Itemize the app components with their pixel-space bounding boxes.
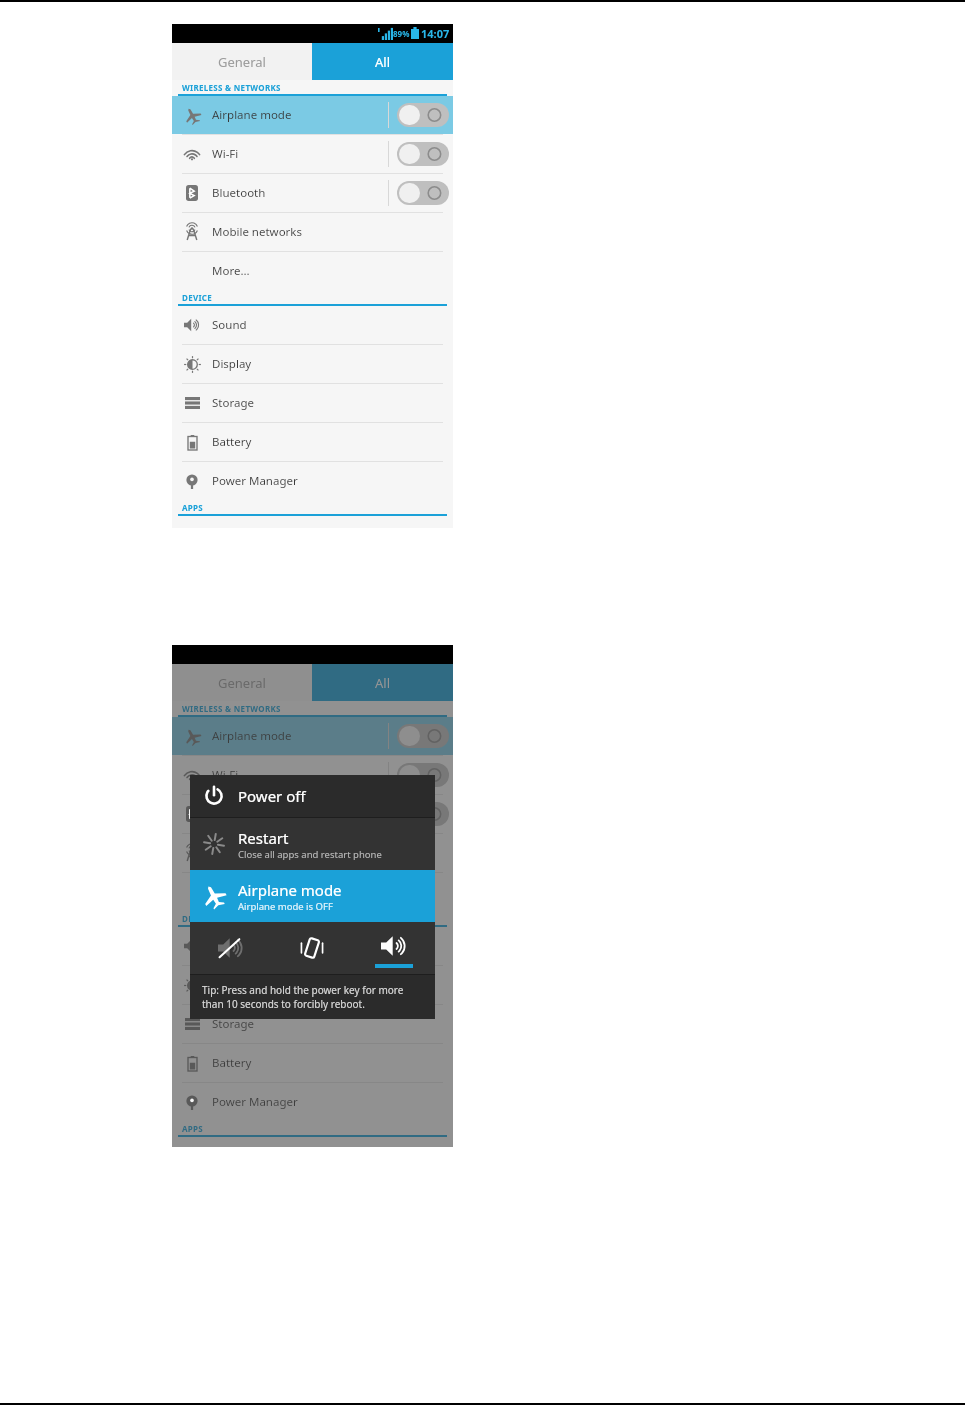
button[interactable]: Airplane mode [190, 870, 435, 922]
button[interactable] [397, 142, 449, 166]
button[interactable]: Sound [172, 306, 453, 344]
button[interactable]: Display [172, 966, 453, 1004]
button[interactable]: General [172, 43, 312, 80]
staticText: DEVICE [182, 292, 213, 303]
button[interactable]: Sound on [353, 922, 435, 974]
staticText: Mobile networks [212, 845, 303, 861]
staticText: Display [212, 356, 252, 372]
staticText: All [375, 674, 391, 692]
staticText: Power Manager [212, 473, 298, 489]
button[interactable]: More… [172, 873, 453, 911]
button[interactable]: Silent mode [190, 922, 271, 974]
button[interactable]: Battery [172, 423, 453, 461]
button[interactable]: Bluetooth [172, 174, 453, 212]
button[interactable]: Power Manager [172, 1083, 453, 1121]
button[interactable] [397, 181, 449, 205]
staticText: Airplane mode [238, 880, 342, 900]
button[interactable] [397, 763, 449, 787]
staticText: Battery [212, 434, 252, 450]
staticText: Restart [238, 828, 289, 848]
staticText: APPS [182, 502, 204, 513]
button[interactable]: Airplane mode [172, 717, 453, 755]
staticText: Sound [212, 317, 247, 333]
staticText: Power off [238, 786, 306, 806]
staticText: General [218, 674, 266, 692]
staticText: More… [212, 884, 250, 900]
staticText: Wi-Fi [212, 146, 239, 162]
staticText: All [375, 53, 391, 71]
staticText: APPS [182, 1123, 204, 1134]
staticText: Power Manager [212, 1094, 298, 1110]
staticText: Bluetooth [212, 185, 266, 201]
button[interactable]: Wi-Fi [172, 756, 453, 794]
staticText: Mobile networks [212, 224, 303, 240]
staticText: 14:07 [421, 26, 450, 41]
staticText: Wi-Fi [212, 767, 239, 783]
button[interactable]: All [312, 664, 453, 701]
staticText: Storage [212, 1016, 254, 1032]
button[interactable]: Wi-Fi [172, 135, 453, 173]
button[interactable]: Storage [172, 384, 453, 422]
staticText: 89% [393, 28, 410, 39]
staticText: WIRELESS & NETWORKS [182, 82, 281, 93]
button[interactable] [397, 802, 449, 826]
button[interactable]: Sound [172, 927, 453, 965]
staticText: Airplane mode [212, 728, 292, 744]
staticText: Bluetooth [212, 806, 266, 822]
staticText: Tip: Press and hold the power key for mo… [202, 983, 425, 1011]
button[interactable]: Airplane mode [172, 96, 453, 134]
staticText: DEVICE [182, 913, 213, 924]
staticText: General [218, 53, 266, 71]
button[interactable]: More… [172, 252, 453, 290]
button[interactable]: Bluetooth [172, 795, 453, 833]
button[interactable]: Battery [172, 1044, 453, 1082]
button[interactable]: Power off [190, 775, 435, 817]
staticText: Close all apps and restart phone [238, 848, 382, 861]
button[interactable]: Power Manager [172, 462, 453, 500]
button[interactable] [397, 103, 449, 127]
staticText: Airplane mode is OFF [238, 900, 333, 913]
button[interactable]: Vibrate mode [271, 922, 353, 974]
staticText: Airplane mode [212, 107, 292, 123]
button[interactable]: All [312, 43, 453, 80]
staticText: WIRELESS & NETWORKS [182, 703, 281, 714]
button[interactable]: General [172, 664, 312, 701]
button[interactable] [397, 724, 449, 748]
staticText: More… [212, 263, 250, 279]
button[interactable]: Storage [172, 1005, 453, 1043]
staticText: Sound [212, 938, 247, 954]
button[interactable]: Mobile networks [172, 834, 453, 872]
button[interactable]: Display [172, 345, 453, 383]
staticText: Battery [212, 1055, 252, 1071]
staticText: Display [212, 977, 252, 993]
staticText: Storage [212, 395, 254, 411]
button[interactable]: Mobile networks [172, 213, 453, 251]
button[interactable]: Restart [190, 818, 435, 870]
